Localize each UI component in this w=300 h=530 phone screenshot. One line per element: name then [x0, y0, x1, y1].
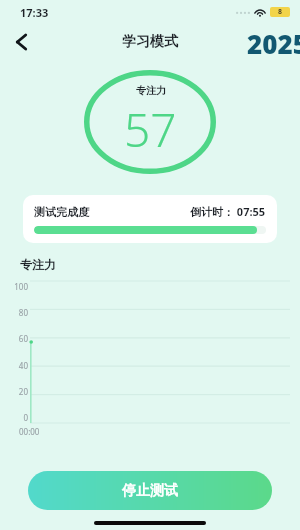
button[interactable]: 测试完成度 [23, 195, 277, 243]
staticText: 专注力 [20, 257, 56, 272]
staticText: 20 [18, 386, 28, 397]
staticText: 60 [18, 333, 28, 344]
staticText: 0 [23, 412, 28, 423]
staticText: 测试完成度 [34, 205, 89, 219]
staticText: 80 [18, 307, 28, 318]
button[interactable]: Back [0, 24, 42, 60]
staticText: 00:00 [19, 426, 40, 437]
staticText: 学习模式 [122, 33, 178, 51]
staticText: 2025 [247, 26, 300, 61]
staticText: 倒计时： 07:55 [190, 204, 266, 219]
staticText: 57 [124, 98, 177, 161]
staticText: 8 [278, 7, 283, 17]
staticText: 停止测试 [122, 482, 178, 500]
staticText: 40 [18, 360, 28, 371]
staticText: 17:33 [20, 5, 49, 20]
staticText: 100 [14, 281, 28, 292]
button[interactable]: 停止测试 [28, 471, 272, 510]
staticText: 专注力 [136, 84, 166, 97]
